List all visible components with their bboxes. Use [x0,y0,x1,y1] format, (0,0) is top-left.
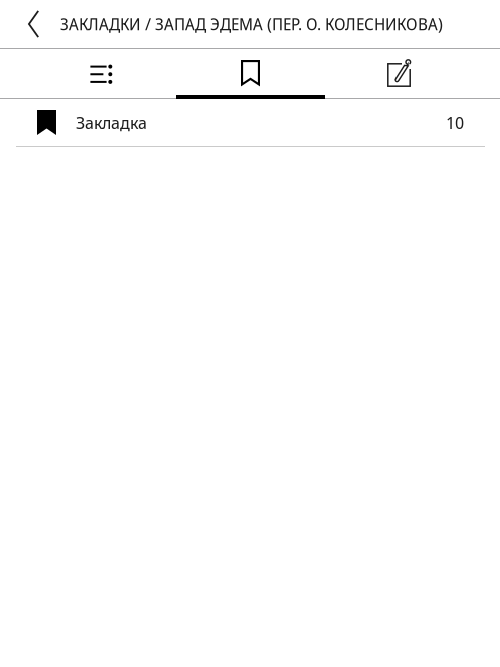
button[interactable]: Bookmarks [175,49,325,98]
button[interactable]: Notes [325,49,475,98]
staticText: 10 [446,111,464,134]
button[interactable]: Закладка [0,99,500,146]
button[interactable]: Back [0,0,60,48]
staticText: ЗАКЛАДКИ / ЗАПАД ЭДЕМА (ПЕР. О. КОЛЕСНИК… [60,13,443,35]
button[interactable]: Contents [25,49,175,98]
staticText: Закладка [76,111,147,134]
